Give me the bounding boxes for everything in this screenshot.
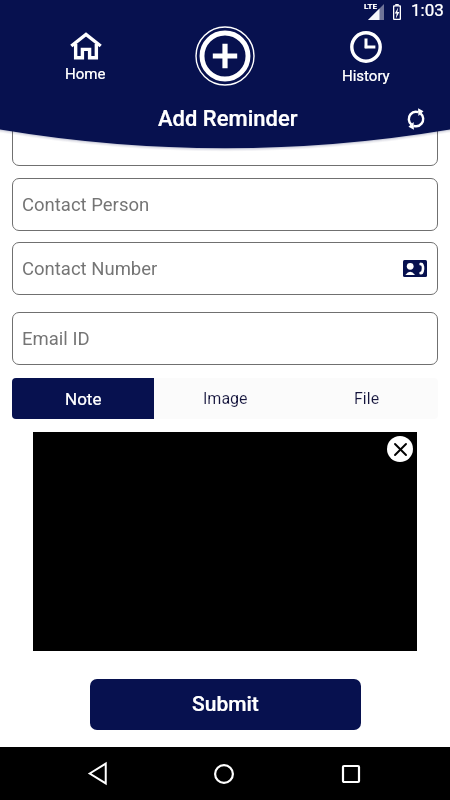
staticText: Contact Number — [22, 258, 158, 280]
button[interactable]: Contact Number — [12, 242, 438, 295]
button[interactable]: Refresh — [400, 103, 432, 135]
button[interactable]: Remove attachment — [387, 436, 413, 462]
button[interactable]: Home — [200, 747, 248, 800]
staticText: History — [342, 67, 390, 85]
button[interactable] — [12, 113, 438, 166]
button[interactable]: Contact Person — [12, 178, 438, 231]
button[interactable]: File — [296, 378, 438, 419]
button[interactable]: History — [333, 31, 398, 85]
button[interactable]: Add reminder — [192, 23, 258, 89]
button[interactable]: Recent apps — [327, 747, 375, 800]
staticText: Add Reminder — [158, 106, 298, 132]
staticText: Note — [65, 389, 102, 409]
button[interactable]: Pick contact — [403, 260, 427, 277]
staticText: LTE — [364, 2, 377, 11]
staticText: Email ID — [22, 328, 90, 350]
button[interactable]: Back — [74, 747, 122, 800]
button[interactable]: Home — [55, 33, 116, 83]
button[interactable]: Email ID — [12, 312, 438, 365]
button[interactable]: Image — [154, 378, 296, 419]
staticText: Contact Person — [22, 194, 150, 216]
staticText: File — [354, 389, 380, 408]
button[interactable]: Note — [12, 378, 154, 419]
staticText: 1:03 — [411, 0, 444, 20]
staticText: Home — [65, 65, 106, 83]
staticText: Image — [203, 389, 248, 408]
button[interactable]: Submit — [90, 679, 361, 730]
staticText: Submit — [192, 692, 259, 717]
